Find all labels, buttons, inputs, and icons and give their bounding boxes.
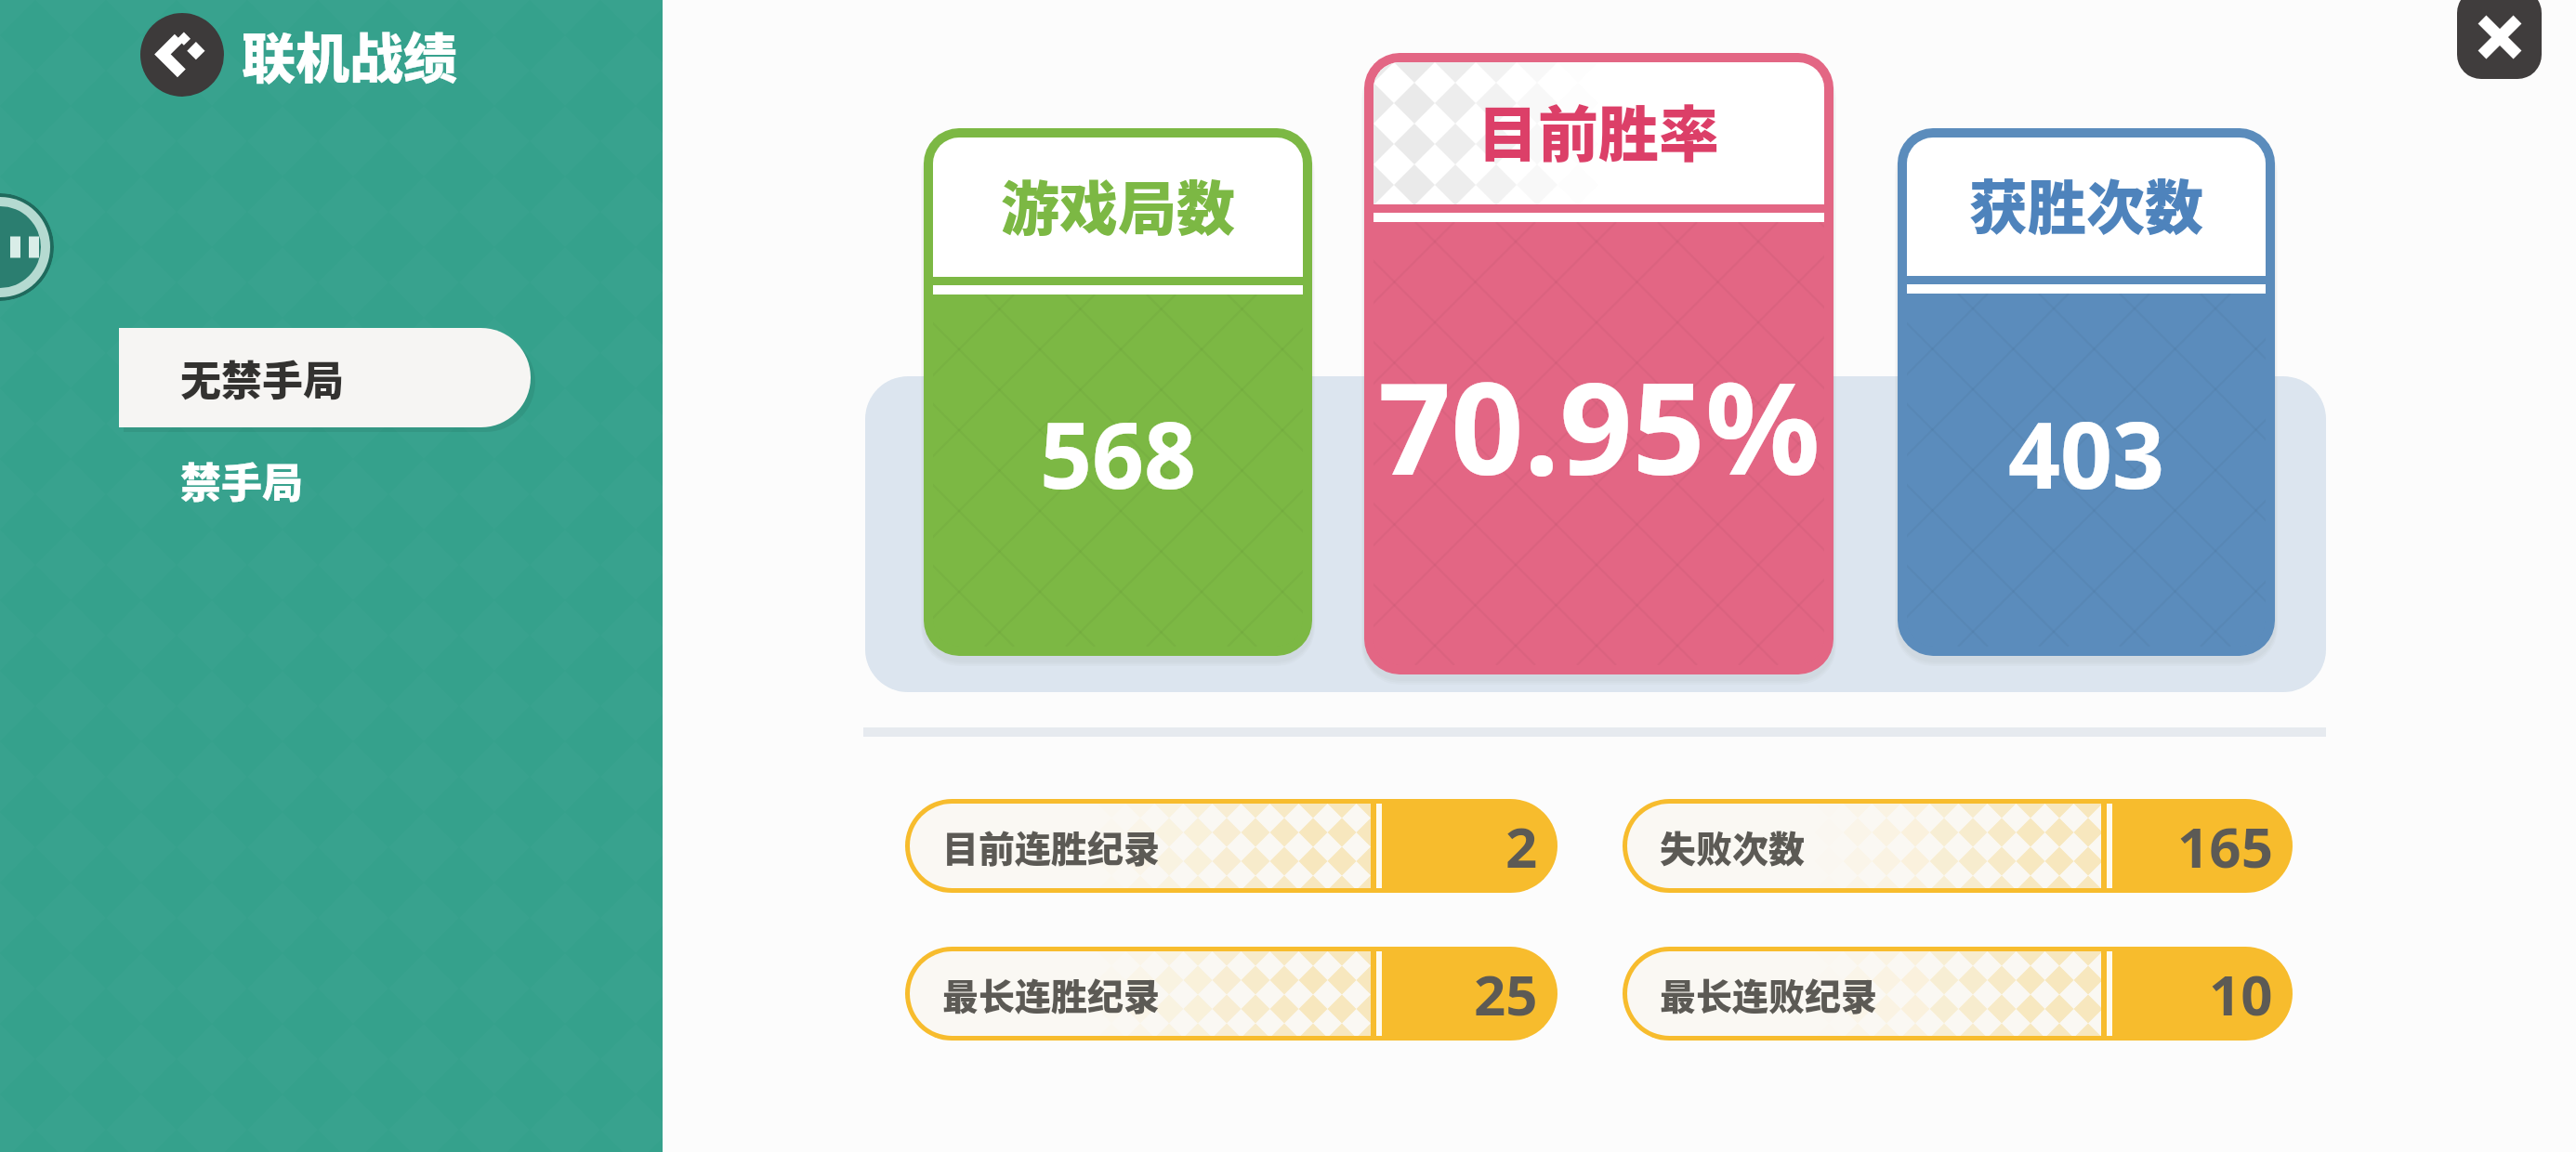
button[interactable]: Back xyxy=(140,13,224,97)
staticText: 165 xyxy=(2177,808,2273,884)
staticText: 10 xyxy=(2209,956,2273,1032)
staticText: 禁手局 xyxy=(180,451,303,510)
staticText: 游戏局数 xyxy=(1001,162,1235,246)
staticText: 目前胜率 xyxy=(1478,86,1720,174)
staticText: 最长连败纪录 xyxy=(1660,968,1878,1020)
button[interactable]: 最长连败纪录 xyxy=(1623,947,2293,1041)
button[interactable]: 失败次数 xyxy=(1623,799,2293,893)
staticText: 联机战绩 xyxy=(242,16,458,94)
button[interactable]: 最长连胜纪录 xyxy=(905,947,1557,1041)
staticText: 获胜次数 xyxy=(1969,161,2203,245)
staticText: 最长连胜纪录 xyxy=(942,968,1161,1020)
button[interactable]: 目前连胜纪录 xyxy=(905,799,1557,893)
button[interactable]: 游戏局数 xyxy=(924,128,1312,656)
button[interactable]: 目前胜率 xyxy=(1364,53,1833,674)
staticText: 2 xyxy=(1505,808,1538,884)
button[interactable]: 无禁手局 xyxy=(119,328,531,427)
staticText: 目前连胜纪录 xyxy=(942,820,1161,872)
staticText: 无禁手局 xyxy=(180,348,344,408)
button[interactable]: Pause xyxy=(0,193,54,301)
staticText: 568 xyxy=(1040,391,1197,515)
staticText: 403 xyxy=(2008,391,2165,515)
button[interactable]: Close xyxy=(2457,0,2542,79)
button[interactable]: 禁手局 xyxy=(119,430,531,530)
button[interactable]: 获胜次数 xyxy=(1898,128,2275,656)
staticText: 25 xyxy=(1474,956,1538,1032)
staticText: 70.95% xyxy=(1378,339,1820,513)
staticText: 失败次数 xyxy=(1660,820,1806,872)
